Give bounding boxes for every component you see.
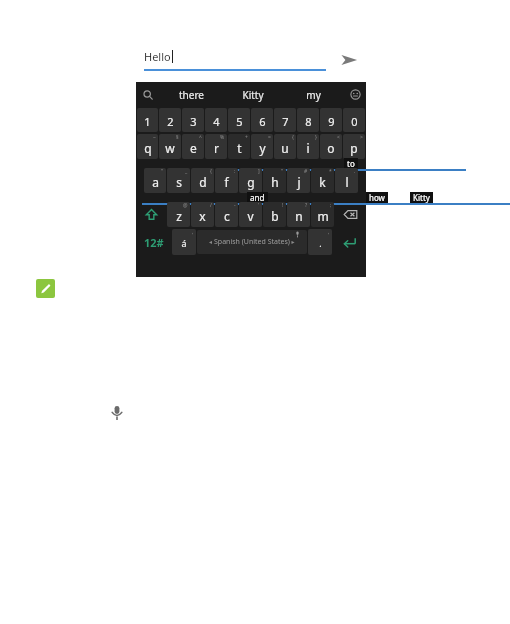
button[interactable]: = bbox=[251, 134, 273, 159]
staticText: @ bbox=[183, 202, 188, 209]
staticText: = bbox=[268, 134, 271, 141]
button[interactable]: Send bbox=[332, 43, 366, 77]
staticText: r bbox=[214, 140, 219, 156]
button[interactable]: Compose bbox=[36, 279, 55, 298]
staticText: ] bbox=[258, 168, 260, 175]
button[interactable]: # bbox=[287, 168, 310, 193]
button[interactable]: Enter bbox=[333, 228, 365, 256]
staticText: Kitty bbox=[242, 88, 264, 102]
staticText: 9 bbox=[328, 114, 335, 129]
staticText: p bbox=[350, 140, 358, 156]
button[interactable]: + bbox=[228, 134, 250, 159]
staticText: c bbox=[224, 208, 230, 224]
button[interactable]: ' bbox=[239, 202, 262, 227]
staticText: 2 bbox=[167, 114, 174, 129]
button[interactable]: { bbox=[274, 134, 296, 159]
staticText: 8 bbox=[305, 114, 312, 129]
button[interactable]: 9 bbox=[320, 108, 342, 132]
button[interactable]: Search bbox=[136, 82, 160, 107]
button[interactable]: : bbox=[215, 168, 238, 193]
button[interactable]: Hello bbox=[144, 49, 326, 71]
button[interactable]: 12# bbox=[137, 228, 171, 256]
button[interactable]: ! bbox=[263, 202, 286, 227]
staticText: Spanish (United States) bbox=[214, 237, 290, 247]
staticText: x bbox=[199, 208, 206, 224]
button[interactable]: ^ bbox=[182, 134, 204, 159]
button[interactable]: { bbox=[191, 168, 214, 193]
staticText: a bbox=[152, 174, 159, 190]
staticText: 3 bbox=[190, 114, 197, 129]
button[interactable]: } bbox=[297, 134, 319, 159]
button[interactable]: 3 bbox=[182, 108, 204, 132]
button[interactable]: ] bbox=[239, 168, 262, 193]
button[interactable]: _ bbox=[167, 168, 190, 193]
button[interactable]: Shift bbox=[137, 201, 166, 228]
staticText: : bbox=[234, 168, 236, 175]
staticText: < bbox=[337, 134, 340, 141]
button[interactable]: ◂ bbox=[197, 230, 307, 254]
button[interactable]: , bbox=[308, 229, 332, 255]
button[interactable]: 5 bbox=[228, 108, 250, 132]
button[interactable]: ~ bbox=[137, 134, 158, 159]
staticText: ◂ bbox=[209, 238, 214, 246]
staticText: . bbox=[354, 168, 356, 175]
button[interactable]: < bbox=[320, 134, 342, 159]
button[interactable]: " bbox=[263, 168, 286, 193]
staticText: ' bbox=[258, 202, 260, 209]
staticText: ! bbox=[282, 202, 284, 209]
staticText: o bbox=[327, 140, 335, 156]
button[interactable]: Backspace bbox=[335, 201, 365, 228]
button[interactable]: 2 bbox=[159, 108, 181, 132]
staticText: á bbox=[181, 237, 187, 249]
staticText: ? bbox=[305, 202, 308, 209]
staticText: - bbox=[234, 202, 236, 209]
staticText: d bbox=[199, 174, 207, 190]
staticText: y bbox=[259, 140, 266, 156]
button[interactable]: ; bbox=[311, 202, 334, 227]
button[interactable]: 0 bbox=[343, 108, 365, 132]
staticText: 7 bbox=[282, 114, 289, 129]
button[interactable]: @ bbox=[167, 202, 190, 227]
button[interactable]: , bbox=[172, 229, 196, 255]
staticText: * bbox=[329, 168, 332, 175]
staticText: l bbox=[345, 174, 349, 190]
staticText: 0 bbox=[351, 114, 358, 129]
staticText: # bbox=[304, 168, 308, 175]
button[interactable]: my bbox=[283, 82, 344, 107]
button[interactable]: Emoji bbox=[344, 82, 366, 107]
button[interactable]: Voice input bbox=[107, 403, 127, 423]
staticText: e bbox=[190, 140, 197, 156]
button[interactable]: 6 bbox=[251, 108, 273, 132]
staticText: > bbox=[360, 134, 363, 141]
button[interactable]: 8 bbox=[297, 108, 319, 132]
button[interactable]: 7 bbox=[274, 108, 296, 132]
button[interactable]: 1 bbox=[137, 108, 158, 132]
button[interactable]: - bbox=[215, 202, 238, 227]
staticText: m bbox=[317, 208, 329, 224]
staticText: § bbox=[176, 134, 179, 141]
staticText: ~ bbox=[153, 134, 156, 141]
button[interactable]: § bbox=[159, 134, 181, 159]
staticText: , bbox=[192, 229, 194, 236]
staticText: t bbox=[237, 140, 242, 156]
button[interactable]: % bbox=[205, 134, 227, 159]
staticText: ^ bbox=[199, 134, 202, 141]
staticText: 1 bbox=[144, 114, 151, 129]
staticText: / bbox=[210, 202, 212, 209]
button[interactable]: / bbox=[191, 202, 214, 227]
staticText: v bbox=[247, 208, 254, 224]
staticText: { bbox=[292, 134, 294, 141]
button[interactable]: . bbox=[335, 168, 358, 193]
staticText: Kitty bbox=[413, 192, 430, 203]
staticText: h bbox=[271, 174, 279, 190]
button[interactable]: * bbox=[311, 168, 334, 193]
staticText: j bbox=[297, 174, 301, 190]
staticText: and bbox=[250, 192, 265, 203]
button[interactable]: 4 bbox=[205, 108, 227, 132]
button[interactable]: Kitty bbox=[222, 82, 283, 107]
staticText: b bbox=[271, 208, 279, 224]
button[interactable]: > bbox=[343, 134, 365, 159]
button[interactable]: there bbox=[160, 82, 222, 107]
button[interactable]: ? bbox=[287, 202, 310, 227]
button[interactable]: " bbox=[144, 168, 166, 193]
